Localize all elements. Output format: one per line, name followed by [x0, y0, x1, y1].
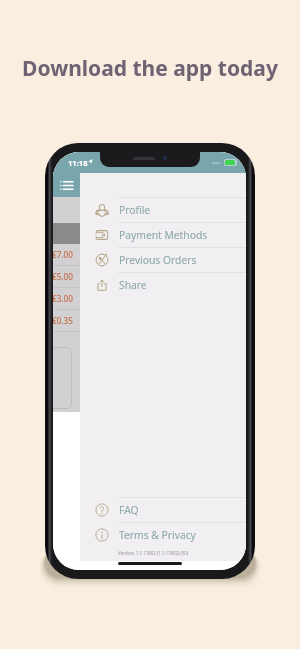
button[interactable]: Profile — [80, 197, 246, 222]
button[interactable]: Share — [80, 272, 246, 297]
staticText: €0.35 — [53, 315, 73, 326]
staticText: Download the app today — [0, 54, 300, 83]
button[interactable]: Previous Orders — [80, 247, 246, 272]
staticText: Share — [119, 278, 147, 292]
staticText: Previous Orders — [119, 253, 197, 267]
staticText: Payment Methods — [119, 228, 208, 242]
staticText: €5.00 — [53, 271, 73, 282]
button[interactable]: FAQ — [80, 497, 246, 522]
staticText: Version: 1.1.11802 (1.1.11802) (50) — [118, 550, 189, 556]
staticText: 11:18 — [68, 158, 88, 168]
staticText: €7.00 — [53, 249, 73, 260]
button[interactable]: Payment Methods — [80, 222, 246, 247]
staticText: FAQ — [119, 503, 139, 517]
staticText: €3.00 — [53, 293, 73, 304]
button[interactable]: Menu — [53, 173, 80, 197]
staticText: Profile — [119, 203, 151, 217]
button[interactable]: Terms & Privacy — [80, 522, 246, 547]
staticText: Terms & Privacy — [119, 528, 196, 542]
